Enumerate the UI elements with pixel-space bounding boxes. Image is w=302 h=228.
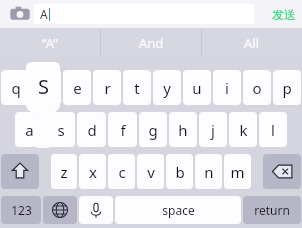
button[interactable]: f — [108, 112, 137, 147]
staticText: 123 — [11, 202, 32, 218]
button[interactable]: x — [79, 154, 106, 189]
staticText: y — [163, 78, 171, 98]
button[interactable]: Shift — [1, 154, 39, 189]
button[interactable]: e — [63, 70, 91, 105]
staticText: return — [254, 202, 290, 218]
staticText: g — [148, 120, 158, 140]
button[interactable]: p — [273, 70, 301, 105]
staticText: f — [120, 120, 126, 140]
button[interactable]: u — [183, 70, 211, 105]
staticText: “A” — [42, 34, 58, 52]
staticText: space — [162, 202, 195, 218]
staticText: x — [89, 162, 97, 182]
staticText: r — [104, 78, 111, 98]
button[interactable]: j — [199, 112, 227, 147]
button[interactable]: k — [229, 112, 257, 147]
staticText: l — [271, 120, 275, 140]
button[interactable]: m — [224, 154, 251, 189]
button[interactable]: Switch language — [43, 196, 77, 224]
button[interactable]: s — [46, 112, 75, 147]
button[interactable]: And — [101, 28, 201, 57]
button[interactable]: 发送 — [272, 7, 296, 22]
staticText: v — [147, 162, 155, 182]
button[interactable]: r — [93, 70, 121, 105]
staticText: j — [211, 120, 215, 140]
button[interactable]: v — [137, 154, 164, 189]
staticText: p — [282, 78, 292, 98]
staticText: o — [252, 78, 262, 98]
button[interactable]: a — [15, 112, 44, 147]
staticText: s — [57, 120, 65, 140]
staticText: And — [139, 34, 164, 52]
button[interactable]: A — [34, 4, 254, 24]
button[interactable]: b — [166, 154, 193, 189]
staticText: k — [239, 120, 248, 140]
button[interactable]: 123 — [1, 196, 41, 224]
button[interactable]: Backspace — [263, 154, 301, 189]
staticText: a — [25, 120, 34, 140]
button[interactable]: o — [243, 70, 271, 105]
button[interactable]: t — [123, 70, 151, 105]
button[interactable]: l — [259, 112, 287, 147]
button[interactable]: Camera — [8, 2, 32, 26]
staticText: S — [38, 73, 49, 100]
button[interactable]: space — [115, 196, 241, 224]
button[interactable]: z — [51, 154, 77, 189]
staticText: i — [225, 78, 229, 98]
button[interactable]: w — [32, 70, 61, 105]
staticText: A — [40, 6, 48, 22]
staticText: e — [73, 78, 82, 98]
button[interactable]: n — [195, 154, 222, 189]
button[interactable]: c — [108, 154, 135, 189]
staticText: 发送 — [272, 7, 296, 22]
button[interactable]: y — [153, 70, 181, 105]
button[interactable]: g — [139, 112, 167, 147]
button[interactable]: q — [1, 70, 30, 105]
staticText: q — [11, 78, 21, 98]
staticText: m — [230, 162, 245, 182]
button[interactable]: All — [202, 28, 302, 57]
staticText: w — [41, 78, 53, 98]
staticText: d — [87, 120, 97, 140]
staticText: t — [134, 78, 140, 98]
button[interactable]: “A” — [0, 28, 100, 57]
staticText: b — [175, 162, 185, 182]
button[interactable]: d — [77, 112, 106, 147]
staticText: z — [60, 162, 68, 182]
button[interactable]: i — [213, 70, 241, 105]
staticText: All — [244, 34, 260, 52]
staticText: u — [192, 78, 202, 98]
staticText: h — [178, 120, 188, 140]
staticText: c — [118, 162, 126, 182]
button[interactable]: h — [169, 112, 197, 147]
button[interactable]: Voice input — [79, 196, 113, 224]
staticText: n — [204, 162, 214, 182]
button[interactable]: return — [243, 196, 301, 224]
